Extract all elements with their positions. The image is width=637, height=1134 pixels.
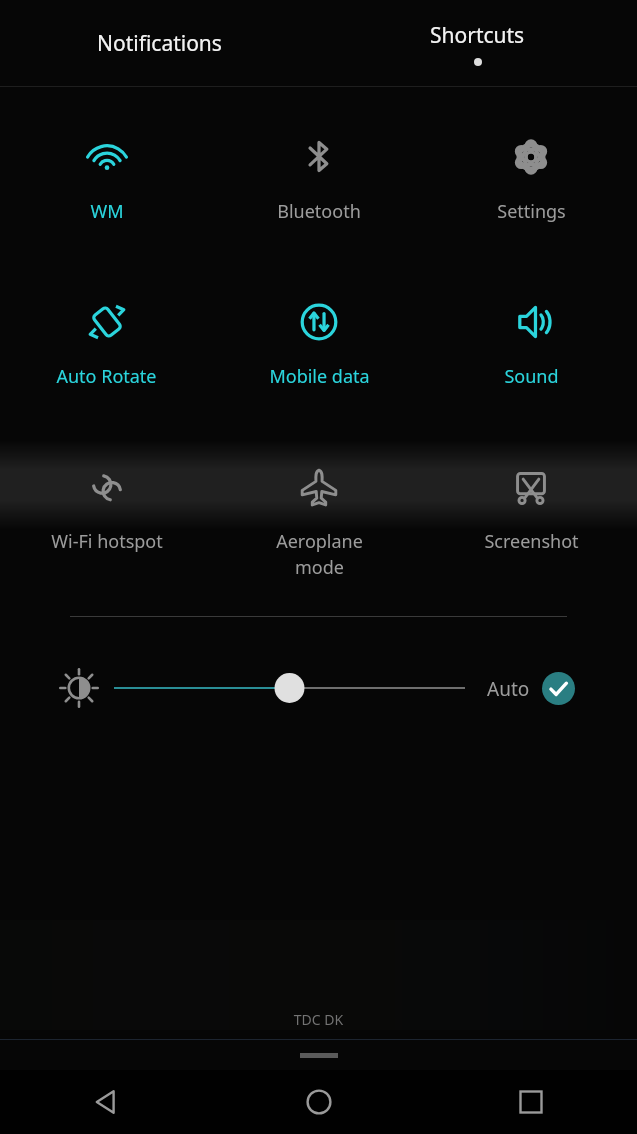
button[interactable]: Auto — [487, 672, 575, 705]
staticText: TDC DK — [0, 1010, 637, 1029]
button[interactable]: Bluetooth — [213, 123, 425, 230]
button[interactable]: Auto Rotate — [0, 288, 213, 395]
staticText: Aeroplane mode — [276, 529, 363, 580]
staticText: Mobile data — [269, 364, 370, 389]
button[interactable]: Home — [213, 1070, 425, 1134]
button[interactable]: Recents — [425, 1070, 637, 1134]
button[interactable]: Aeroplane mode — [213, 453, 425, 586]
button[interactable]: Settings — [425, 123, 637, 230]
staticText: Auto — [487, 676, 530, 702]
staticText: Sound — [504, 364, 559, 389]
button[interactable]: Sound — [425, 288, 637, 395]
staticText: Shortcuts — [430, 21, 525, 50]
button[interactable]: WM — [0, 123, 213, 230]
staticText: Notifications — [97, 29, 222, 58]
staticText: Bluetooth — [277, 199, 361, 224]
staticText: Auto Rotate — [56, 364, 157, 389]
button[interactable]: Mobile data — [213, 288, 425, 395]
button[interactable]: Shortcuts — [318, 0, 637, 87]
button[interactable] — [114, 668, 465, 708]
other: Brightness — [62, 671, 96, 705]
staticText: Wi-Fi hotspot — [51, 529, 163, 554]
button[interactable]: Wi-Fi hotspot — [0, 453, 213, 560]
staticText: WM — [90, 199, 124, 224]
button[interactable]: Screenshot — [425, 453, 637, 560]
button[interactable]: Notifications — [0, 0, 318, 87]
staticText: Settings — [497, 199, 566, 224]
staticText: Screenshot — [484, 529, 579, 554]
button[interactable]: Back — [0, 1070, 213, 1134]
